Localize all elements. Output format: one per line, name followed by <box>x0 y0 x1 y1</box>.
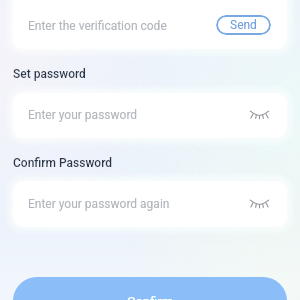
staticText: Enter your password again <box>28 197 170 211</box>
staticText: Confirm <box>13 294 287 300</box>
button[interactable] <box>13 0 287 49</box>
staticText: Send <box>230 18 257 32</box>
button[interactable] <box>13 181 287 227</box>
button[interactable] <box>13 93 287 138</box>
button[interactable]: Send <box>216 15 271 35</box>
button[interactable]: Show password <box>247 192 271 216</box>
staticText: Confirm Password <box>13 156 113 170</box>
staticText: Set password <box>13 67 86 81</box>
button[interactable]: Confirm <box>13 277 287 300</box>
button[interactable]: Show password <box>247 103 271 127</box>
staticText: Enter the verification code <box>28 19 167 33</box>
staticText: Enter your password <box>28 108 138 122</box>
